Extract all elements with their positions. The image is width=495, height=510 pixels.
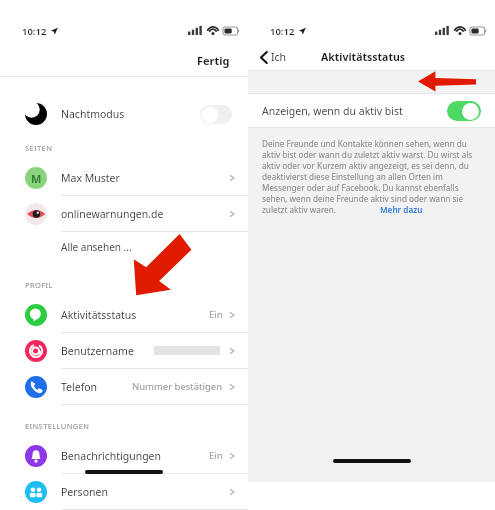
staticText: 10:12 (270, 25, 295, 38)
button[interactable]: Aktivitätsstatus anzeigen (447, 101, 481, 121)
staticText: Nachtmodus (61, 107, 200, 121)
staticText: onlinewarnungen.de (61, 207, 164, 221)
staticText: Ein (209, 308, 223, 321)
button[interactable]: Benachrichtigungen (0, 438, 248, 473)
staticText: Aktivitätsstatus (321, 50, 406, 64)
button[interactable]: Benutzername (0, 333, 248, 368)
button[interactable]: Aktivitätsstatus (0, 297, 248, 332)
button[interactable]: Nachtmodus (0, 97, 248, 131)
staticText: M (31, 171, 42, 186)
button[interactable]: Ich (248, 47, 295, 67)
button[interactable]: Personen (0, 474, 248, 509)
staticText: Deine Freunde und Kontakte können sehen,… (262, 138, 481, 215)
staticText: Max Muster (61, 171, 120, 185)
button[interactable]: Alle ansehen ... (0, 232, 248, 262)
button[interactable]: Anzeigen, wenn du aktiv bist (248, 94, 495, 127)
button[interactable]: Telefon (0, 369, 248, 404)
staticText: Ich (271, 50, 287, 64)
staticText: Personen (61, 485, 108, 499)
button[interactable]: Mehr dazu (380, 204, 423, 215)
button[interactable]: M (0, 160, 248, 195)
staticText: Telefon (61, 380, 98, 394)
staticText: Nummer bestätigen (132, 380, 223, 393)
staticText: 10:12 (22, 25, 47, 38)
button[interactable]: Fertig (193, 50, 234, 71)
button[interactable]: onlinewarnungen.de (0, 196, 248, 231)
staticText: EINSTELLUNGEN (25, 421, 90, 431)
staticText: Fertig (197, 53, 230, 68)
staticText: Ein (209, 449, 223, 462)
staticText: PROFIL (25, 280, 53, 290)
staticText: Anzeigen, wenn du aktiv bist (262, 104, 447, 118)
button[interactable]: Nachtmodus umschalten (200, 105, 232, 124)
staticText: Alle ansehen ... (61, 240, 132, 254)
staticText: SEITEN (25, 143, 53, 153)
staticText: Mehr dazu (380, 204, 423, 215)
staticText: Benachrichtigungen (61, 449, 162, 463)
staticText: Aktivitätsstatus (61, 308, 137, 322)
staticText: Benutzername (61, 344, 134, 358)
